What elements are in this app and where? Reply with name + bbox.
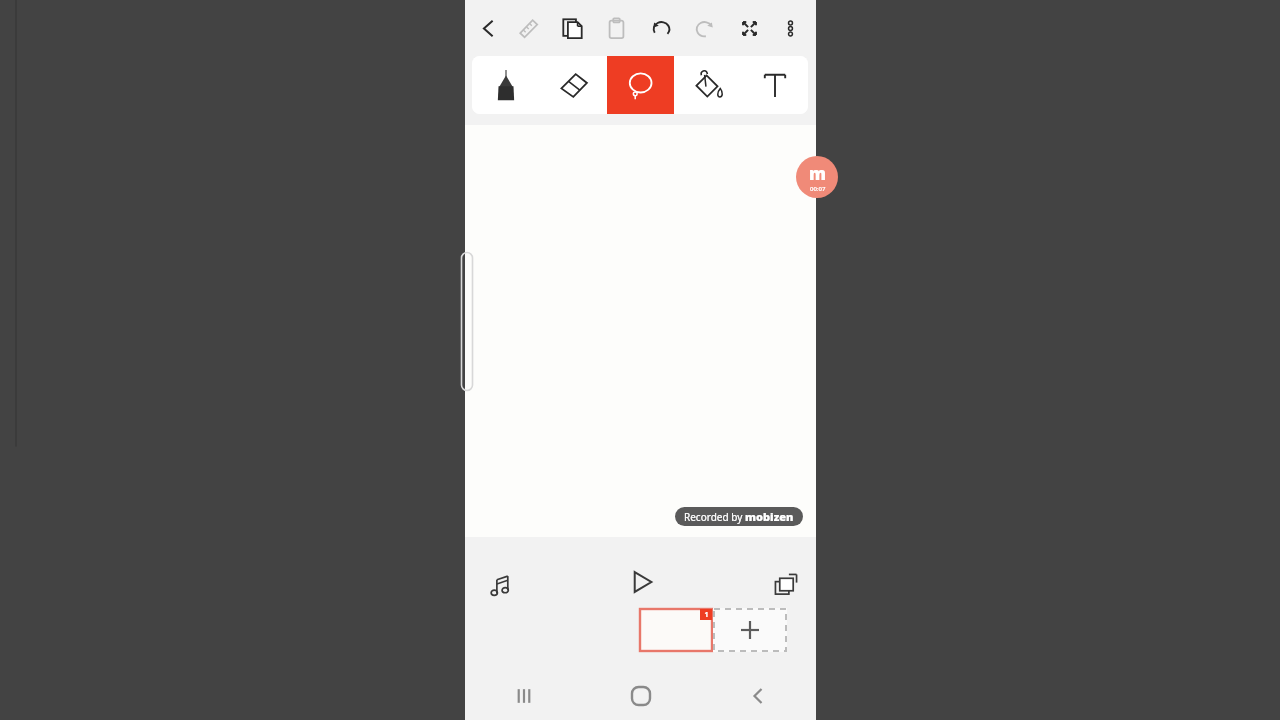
button[interactable]: Eraser [540,56,607,114]
button[interactable]: Ruler [508,8,548,48]
button[interactable]: Back [699,672,816,720]
button[interactable]: Undo [641,8,681,48]
button[interactable]: Play [619,559,665,605]
button[interactable]: Lasso select [607,56,674,114]
button[interactable]: More options [770,8,810,48]
button[interactable]: Redo [684,8,724,48]
button[interactable]: Recent apps [465,672,582,720]
staticText: Recorded by [684,510,745,524]
button[interactable]: Fullscreen [729,8,769,48]
button[interactable]: Layers [766,565,806,605]
button[interactable]: Copy [552,8,592,48]
button[interactable]: Back [468,8,508,48]
button[interactable]: Fill [674,56,741,114]
staticText: 1 [704,610,709,620]
button[interactable]: Home [582,672,699,720]
button[interactable]: Paste [596,8,636,48]
staticText: m [809,162,826,185]
staticText: mobizen [745,509,794,524]
button[interactable]: Add frame [713,608,787,652]
button[interactable]: 1 [639,608,713,652]
button[interactable]: Pen [472,56,540,114]
button[interactable]: Mobizen recorder [796,156,838,198]
button[interactable]: Music [481,567,519,605]
staticText: 00:07 [810,185,826,193]
button[interactable]: Text [741,56,808,114]
